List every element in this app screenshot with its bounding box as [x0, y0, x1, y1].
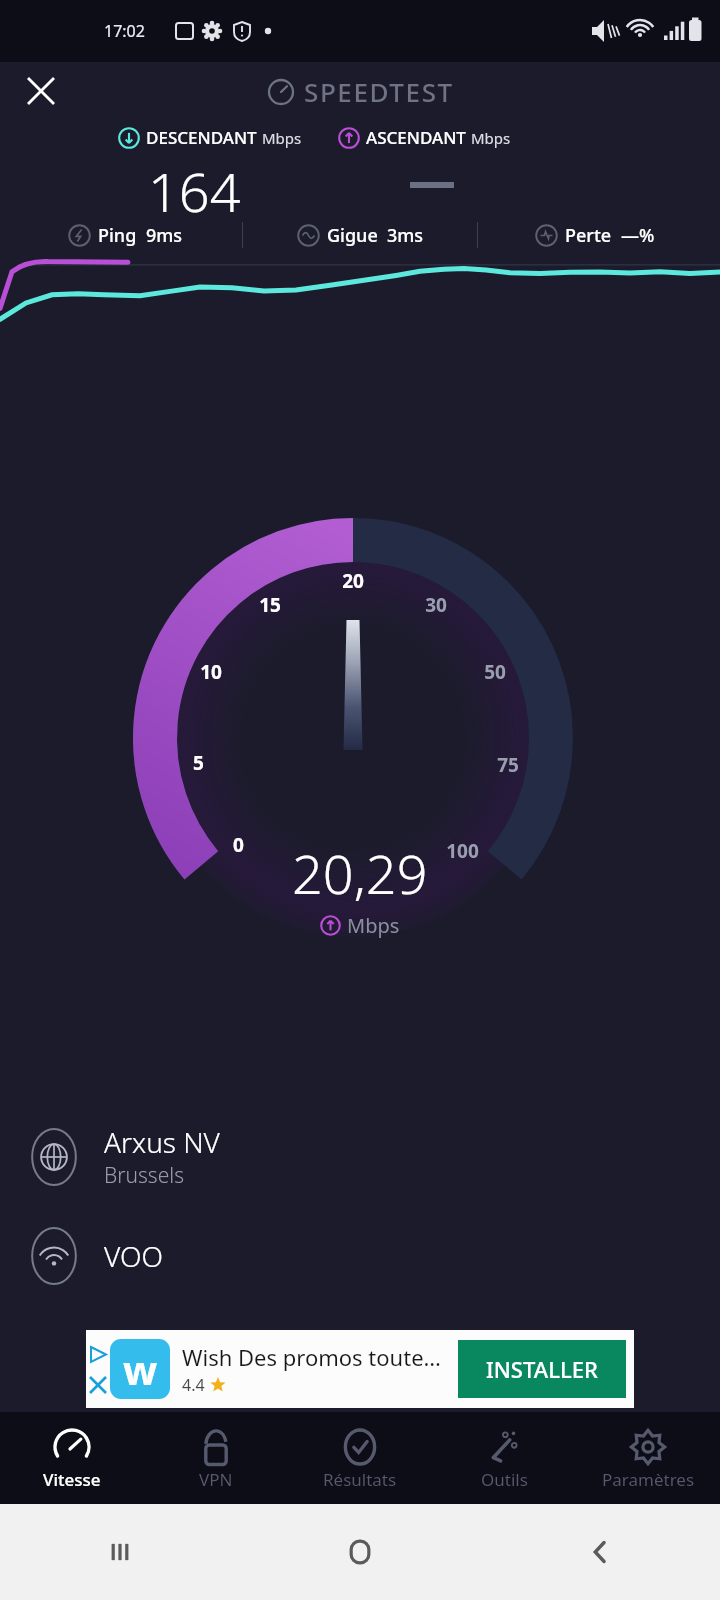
button[interactable]: w: [86, 1330, 634, 1408]
staticText: 4.4: [182, 1374, 205, 1396]
button[interactable]: Outils: [432, 1412, 576, 1504]
staticText: Gigue: [327, 223, 378, 248]
staticText: 30: [425, 592, 447, 618]
staticText: VOO: [104, 1237, 163, 1275]
button[interactable]: Vitesse: [0, 1412, 144, 1504]
staticText: Arxus NV: [104, 1123, 220, 1161]
button[interactable]: Home: [240, 1504, 480, 1600]
staticText: 15: [259, 592, 281, 618]
staticText: 100: [446, 838, 479, 864]
staticText: INSTALLER: [486, 1354, 598, 1384]
staticText: Brussels: [104, 1161, 184, 1190]
staticText: Vitesse: [43, 1468, 101, 1491]
staticText: ASCENDANT: [366, 126, 466, 149]
staticText: 0: [233, 832, 244, 858]
staticText: SPEEDTEST: [304, 74, 454, 109]
staticText: Mbps: [471, 128, 511, 148]
button[interactable]: Gigue: [243, 223, 477, 248]
staticText: 164: [148, 154, 241, 216]
staticText: Outils: [481, 1468, 528, 1491]
button[interactable]: Close: [14, 64, 68, 118]
staticText: 9ms: [146, 223, 183, 248]
staticText: Ping: [98, 223, 137, 248]
staticText: w: [123, 1342, 158, 1396]
staticText: 20,29: [292, 836, 428, 910]
button[interactable]: Paramètres: [576, 1412, 720, 1504]
button[interactable]: Perte: [478, 223, 712, 248]
button[interactable]: Résultats: [288, 1412, 432, 1504]
staticText: 50: [484, 659, 506, 685]
staticText: —%: [621, 223, 655, 248]
staticText: Mbps: [347, 912, 400, 939]
staticText: 3ms: [387, 223, 424, 248]
staticText: Paramètres: [602, 1468, 695, 1491]
button[interactable]: Back: [480, 1504, 720, 1600]
staticText: Wish Des promos toute…: [182, 1342, 441, 1372]
staticText: Mbps: [262, 128, 302, 148]
staticText: 10: [200, 659, 222, 685]
staticText: Perte: [565, 223, 612, 248]
button[interactable]: VPN: [144, 1412, 288, 1504]
button[interactable]: Recents: [0, 1504, 240, 1600]
button[interactable]: VOO: [24, 1226, 720, 1286]
button[interactable]: Arxus NV: [24, 1123, 720, 1190]
staticText: VPN: [199, 1468, 233, 1491]
staticText: 20: [342, 568, 364, 594]
staticText: 17:02: [104, 20, 145, 42]
button[interactable]: INSTALLER: [458, 1340, 626, 1398]
staticText: DESCENDANT: [146, 126, 257, 149]
staticText: 75: [497, 752, 519, 778]
staticText: 5: [193, 750, 204, 776]
staticText: Résultats: [323, 1468, 397, 1491]
button[interactable]: Ping: [8, 223, 242, 248]
